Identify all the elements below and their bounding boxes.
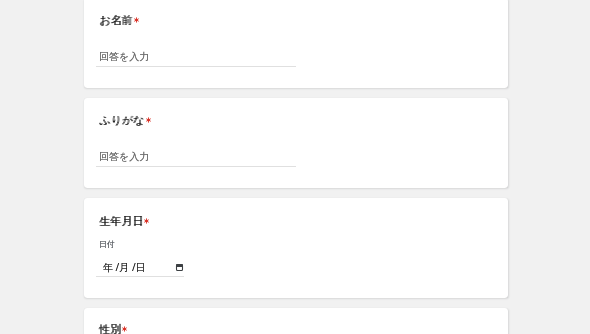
staticText: 日付 [99,239,115,249]
button[interactable]: Pick date [174,262,184,272]
staticText: 日付 [99,239,115,249]
staticText: 年 /月 /日 [103,260,146,274]
staticText: ふりがな [100,113,146,127]
button[interactable]: 回答を入力 [96,50,296,67]
button[interactable]: 性別 [84,308,508,334]
staticText: ふりがな [99,113,145,127]
button[interactable]: ふりがな [84,98,508,188]
button[interactable]: お名前 [84,0,508,88]
staticText: お名前 [100,13,134,27]
staticText: 性別 [100,322,122,334]
button[interactable]: 生年月日 [84,198,508,298]
staticText: 回答を入力 [99,150,150,163]
button[interactable]: 回答を入力 [96,150,296,167]
button[interactable]: 年 /月 /日 [96,260,184,277]
staticText: 性別 [99,322,121,334]
staticText: 回答を入力 [99,50,150,63]
staticText: 生年月日 [100,214,144,228]
staticText: 年 /月 /日 [103,260,146,274]
staticText: 回答を入力 [99,50,150,63]
staticText: 回答を入力 [99,150,150,163]
staticText: お名前 [99,13,133,27]
staticText: 生年月日 [99,214,143,228]
